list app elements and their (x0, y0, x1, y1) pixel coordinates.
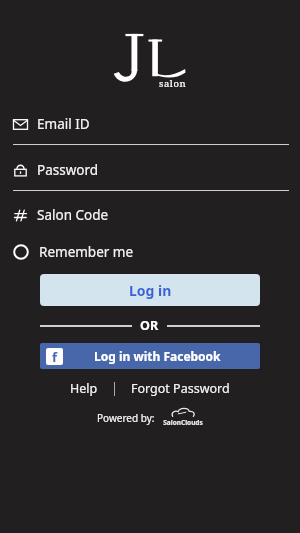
staticText: Log in (129, 281, 172, 300)
button[interactable]: Help (54, 378, 114, 399)
other: SalonClouds (162, 407, 204, 429)
staticText: OR (140, 317, 159, 334)
button[interactable]: Log in (40, 274, 260, 306)
staticText: Salon Code (37, 206, 109, 224)
other: Password (13, 163, 28, 178)
staticText: Password (37, 161, 99, 179)
button[interactable]: Password (0, 158, 300, 182)
button[interactable]: Facebook (40, 343, 260, 369)
other: Email (13, 117, 28, 132)
other: Salon code (13, 208, 28, 223)
staticText: Powered by: (97, 411, 155, 425)
button[interactable]: Salon code (0, 203, 300, 227)
staticText: Log in with Facebook (94, 348, 221, 364)
staticText: Email ID (37, 115, 90, 133)
button[interactable]: Forgot Password (115, 378, 246, 399)
staticText: Forgot Password (131, 380, 230, 397)
button[interactable]: Remember me (0, 241, 300, 263)
button[interactable]: Email (0, 112, 300, 136)
other: Facebook (46, 348, 63, 365)
staticText: f (52, 348, 58, 365)
staticText: Help (70, 380, 98, 397)
staticText: Remember me (39, 243, 134, 261)
staticText: salon (159, 77, 187, 90)
other: JL Salon logo (111, 22, 189, 92)
staticText: SalonClouds (163, 418, 203, 427)
